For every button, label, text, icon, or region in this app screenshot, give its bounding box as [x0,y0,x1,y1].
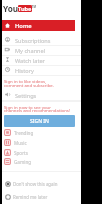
button[interactable]: Settings [2,90,81,100]
button[interactable]: You [3,3,19,14]
button[interactable]: Don't show this again [2,178,81,190]
staticText: Tube [18,5,32,12]
staticText: Music [14,140,27,146]
button[interactable]: Gaming [2,157,81,167]
button[interactable]: Watch later [2,55,81,65]
staticText: Sign in to like videos, [4,78,47,84]
button[interactable]: Sports [2,148,81,158]
button[interactable]: channels and recommendations! [4,107,71,113]
staticText: TM [32,5,36,9]
button[interactable]: History [2,65,81,75]
staticText: Sign in now to see your [4,104,51,110]
button[interactable]: My channel [2,45,81,55]
staticText: Subscriptions [15,37,51,45]
button[interactable]: Subscriptions [2,35,81,45]
staticText: Remind me later [13,194,48,200]
staticText: Settings [15,92,37,100]
staticText: Don't show this again [13,181,58,187]
staticText: Sports [14,150,28,156]
staticText: My channel [15,47,46,55]
staticText: You [3,3,19,14]
staticText: SIGN IN [30,118,49,125]
staticText: Home [15,22,32,30]
staticText: History [15,67,34,75]
button[interactable]: Home [2,20,75,31]
staticText: channels and recommendations! [4,107,71,113]
staticText: Gaming [14,159,32,165]
button[interactable]: Trending [2,128,81,138]
staticText: comment and subscribe. [4,82,54,88]
staticText: Trending [14,130,34,136]
staticText: Watch later [15,57,45,65]
button[interactable]: Remind me later [2,191,81,203]
button[interactable]: Sign in now to see your [4,104,51,110]
button[interactable]: SIGN IN [4,115,75,127]
button[interactable]: Sign in to like videos, [4,78,47,84]
button[interactable]: comment and subscribe. [4,82,54,88]
button[interactable]: Music [2,138,81,148]
